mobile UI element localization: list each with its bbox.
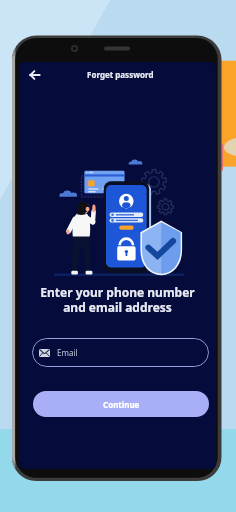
- staticText: Forget password: [87, 69, 154, 80]
- button[interactable]: Continue: [33, 391, 209, 417]
- staticText: Enter your phone number and email addres…: [19, 284, 216, 315]
- staticText: Continue: [103, 399, 140, 410]
- button[interactable]: Email: [32, 338, 209, 367]
- button[interactable]: Back: [23, 63, 46, 86]
- staticText: Email: [57, 347, 78, 358]
